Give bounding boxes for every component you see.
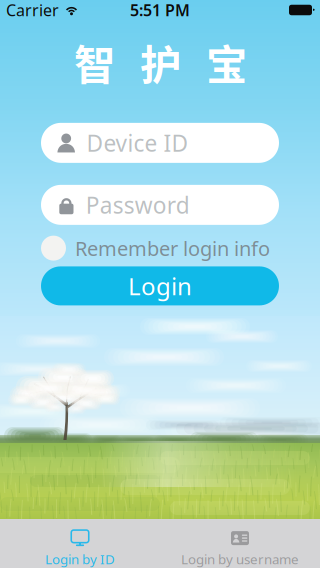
staticText: Remember login info [75, 235, 270, 261]
staticText: Password [86, 190, 190, 220]
button[interactable]: Login by username [160, 519, 320, 568]
button[interactable]: Remember login info [0, 225, 320, 261]
staticText: Device ID [86, 128, 188, 158]
staticText: Login [128, 270, 192, 302]
button[interactable]: Login [0, 261, 320, 305]
staticText: 5:51 PM [130, 0, 190, 21]
staticText: Login by ID [45, 550, 115, 568]
staticText: Login by username [181, 550, 299, 568]
button[interactable]: Login by ID [0, 519, 160, 568]
staticText: 智护宝 [74, 32, 247, 92]
staticText: Carrier [6, 0, 59, 21]
